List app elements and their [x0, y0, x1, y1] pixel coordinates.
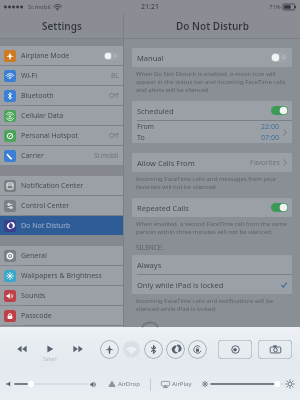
- button[interactable]: Bluetooth: [144, 340, 163, 359]
- staticText: Settings: [42, 19, 82, 33]
- staticText: Only while iPad is locked: [137, 280, 224, 290]
- staticText: Cellular Data: [21, 111, 64, 121]
- button[interactable]: Timer: [218, 340, 252, 359]
- button[interactable]: Only while iPad is locked: [132, 275, 292, 294]
- button[interactable]: Rotation Lock: [188, 340, 207, 359]
- button[interactable]: Cellular Data: [0, 106, 123, 125]
- button[interactable]: From: [132, 121, 292, 143]
- button[interactable]: Control Center: [0, 196, 123, 215]
- button[interactable]: Bluetooth: [0, 86, 123, 105]
- button[interactable]: On: [271, 203, 288, 212]
- button[interactable]: Carrier: [0, 146, 123, 165]
- staticText: Personal Hotspot: [21, 131, 78, 141]
- staticText: Allow Calls From: [137, 158, 195, 168]
- staticText: Passcode: [21, 311, 52, 321]
- button[interactable]: Scheduled: [132, 101, 292, 120]
- staticText: Scheduled: [137, 106, 174, 116]
- staticText: Off: [109, 91, 119, 100]
- button[interactable]: Manual: [132, 48, 292, 67]
- button[interactable]: Off: [104, 52, 119, 60]
- button[interactable]: [15, 379, 87, 389]
- button[interactable]: AirPlay: [161, 380, 192, 388]
- staticText: Si.mobil: [94, 151, 119, 160]
- button[interactable]: Wallpapers & Brightness: [0, 266, 123, 285]
- staticText: When Do Not Disturb is enabled, a moon i…: [136, 70, 288, 94]
- button[interactable]: Airplane Mode: [0, 46, 123, 65]
- staticText: Incoming FaceTime calls and notification…: [136, 297, 288, 313]
- button[interactable]: General: [0, 246, 123, 265]
- button[interactable]: On: [271, 106, 288, 115]
- button[interactable]: Personal Hotspot: [0, 126, 123, 145]
- staticText: When enabled, a second FaceTime call fro…: [136, 220, 288, 236]
- staticText: Favorites: [250, 158, 280, 168]
- staticText: Bluetooth: [21, 91, 54, 101]
- button[interactable]: Next: [71, 342, 85, 356]
- button[interactable]: Allow Calls From: [132, 153, 292, 172]
- staticText: Sounds: [21, 291, 46, 301]
- button[interactable]: Do Not Disturb: [166, 340, 185, 359]
- staticText: Do Not Disturb: [21, 221, 71, 231]
- button[interactable]: Privacy: [0, 326, 123, 345]
- button[interactable]: Off: [271, 53, 288, 62]
- button[interactable]: Passcode: [0, 306, 123, 325]
- button[interactable]: [211, 379, 283, 389]
- staticText: From: [137, 122, 155, 132]
- button[interactable]: iCloud: [0, 356, 123, 375]
- staticText: Wallpapers & Brightness: [21, 271, 102, 281]
- button[interactable]: Previous: [15, 342, 29, 356]
- button[interactable]: Airplane Mode: [100, 340, 119, 359]
- button[interactable]: Sounds: [0, 286, 123, 305]
- button[interactable]: Wi-Fi: [0, 66, 123, 85]
- staticText: Wi-Fi: [21, 71, 38, 81]
- staticText: Manual: [137, 53, 164, 63]
- staticText: Notification Center: [21, 181, 84, 191]
- staticText: Airplane Mode: [21, 51, 70, 61]
- staticText: Safari: [43, 356, 57, 363]
- staticText: Control Center: [21, 201, 70, 211]
- staticText: Si.mobil: [28, 3, 51, 11]
- staticText: To: [137, 133, 145, 143]
- staticText: Always: [137, 260, 162, 270]
- staticText: 21:21: [141, 2, 159, 12]
- staticText: Carrier: [21, 151, 44, 161]
- button[interactable]: Wi-Fi: [122, 340, 141, 359]
- staticText: 22:00: [261, 122, 279, 132]
- staticText: Do Not Disturb: [176, 19, 249, 33]
- staticText: 71%: [269, 3, 281, 11]
- staticText: 07:00: [261, 133, 279, 143]
- staticText: General: [21, 251, 47, 261]
- staticText: SILENCE:: [136, 243, 164, 252]
- button[interactable]: Do Not Disturb: [0, 216, 123, 235]
- button[interactable]: Camera: [258, 340, 292, 359]
- staticText: Incoming FaceTime calls and messages fro…: [136, 175, 288, 191]
- button[interactable]: AirDrop: [108, 380, 140, 388]
- button[interactable]: Play: [43, 342, 57, 356]
- button[interactable]: Repeated Calls: [132, 198, 292, 217]
- staticText: BL: [111, 71, 119, 80]
- button[interactable]: Always: [132, 255, 292, 274]
- staticText: AirDrop: [118, 380, 140, 388]
- staticText: Off: [109, 131, 119, 140]
- button[interactable]: Notification Center: [0, 176, 123, 195]
- staticText: Repeated Calls: [137, 203, 189, 213]
- staticText: AirPlay: [172, 380, 192, 388]
